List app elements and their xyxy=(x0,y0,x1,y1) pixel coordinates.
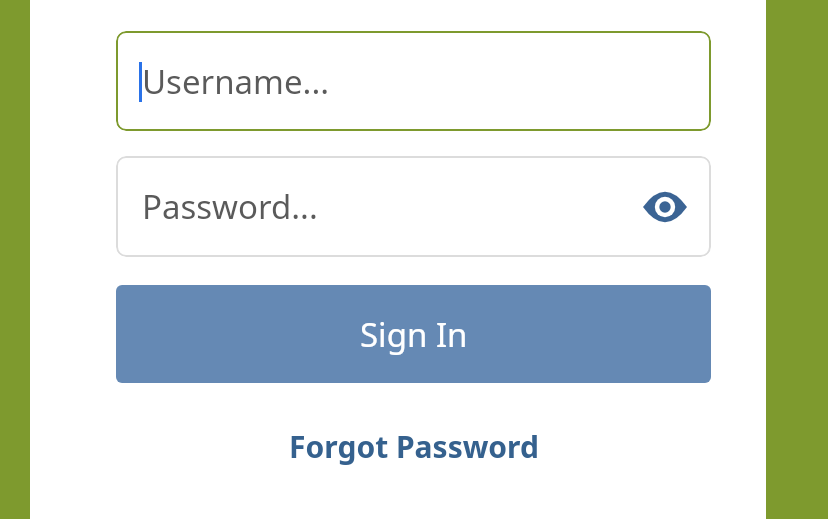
button[interactable]: Sign In xyxy=(116,285,711,383)
staticText: Forgot Password xyxy=(289,426,539,467)
button[interactable]: Username... xyxy=(116,31,711,131)
button[interactable]: Forgot Password xyxy=(116,412,711,480)
staticText: Password... xyxy=(142,184,318,229)
staticText: Sign In xyxy=(360,312,468,357)
button[interactable]: Show password xyxy=(641,183,689,231)
button[interactable]: Password... xyxy=(116,156,711,257)
staticText: Username... xyxy=(142,59,330,104)
